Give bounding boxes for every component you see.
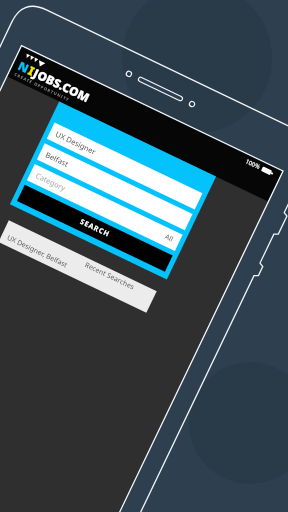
button[interactable]: Recent Searches — [0, 220, 157, 313]
staticText: N — [16, 57, 32, 76]
staticText: UX Designer, Belfast — [5, 233, 69, 270]
staticText: CREATE OPPORTUNITY — [13, 72, 71, 103]
staticText: Recent Searches — [83, 260, 136, 292]
button[interactable]: Category — [27, 164, 183, 251]
button[interactable]: SEARCH — [17, 185, 173, 272]
staticText: Category — [34, 170, 67, 193]
button[interactable]: Belfast — [37, 143, 193, 230]
staticText: 100% — [244, 157, 262, 171]
staticText: Belfast — [44, 149, 71, 169]
button[interactable]: UX Designer — [47, 122, 202, 210]
staticText: I — [26, 62, 38, 79]
staticText: All — [163, 232, 175, 245]
staticText: UX Designer — [54, 129, 98, 157]
staticText: SEARCH — [78, 217, 111, 240]
staticText: JOBS.COM — [31, 65, 93, 105]
